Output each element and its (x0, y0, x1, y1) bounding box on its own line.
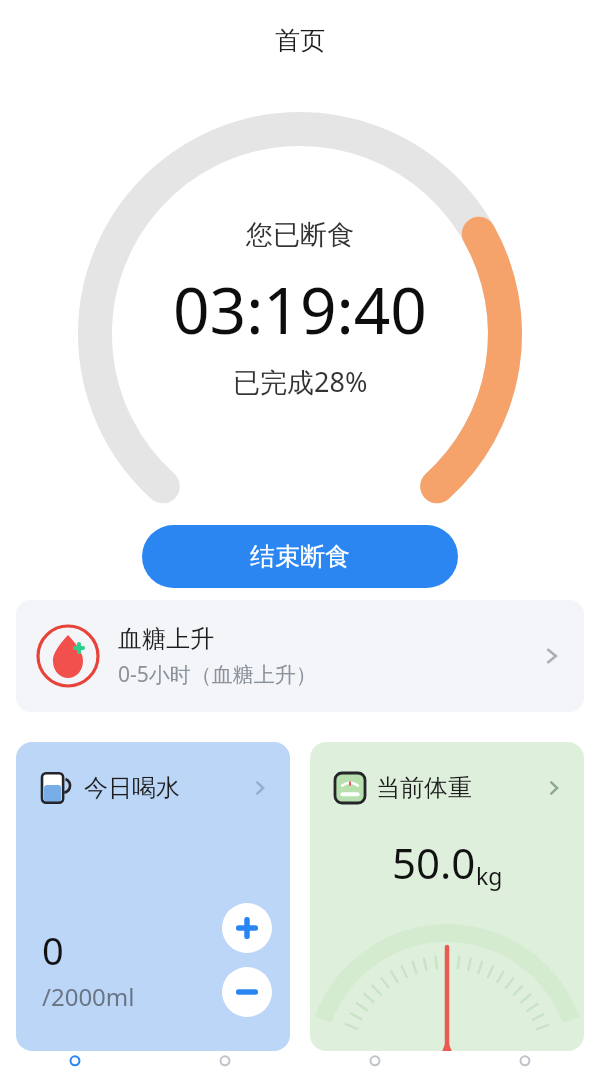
button[interactable]: Tab 4 (450, 1051, 600, 1067)
staticText: 50.0 (392, 834, 476, 891)
button[interactable]: Tab 1 (0, 1051, 150, 1067)
button[interactable]: 今日喝水 (16, 742, 290, 1051)
staticText: 结束断食 (250, 541, 350, 572)
staticText: 今日喝水 (84, 773, 180, 803)
button[interactable]: 结束断食 (142, 525, 458, 588)
staticText: 已完成28% (233, 363, 368, 400)
button[interactable]: 血糖上升 (16, 600, 584, 712)
staticText: /2000ml (42, 980, 135, 1013)
button[interactable]: Tab 2 (150, 1051, 300, 1067)
staticText: 当前体重 (376, 773, 472, 803)
staticText: 首页 (275, 25, 325, 56)
staticText: 血糖上升 (118, 624, 214, 654)
button[interactable]: Add water (222, 903, 272, 953)
staticText: 0-5小时（血糖上升） (118, 660, 317, 689)
button[interactable]: 当前体重 (310, 742, 584, 1051)
staticText: kg (476, 860, 503, 891)
button[interactable]: Tab 3 (300, 1051, 450, 1067)
staticText: 您已断食 (246, 218, 354, 252)
staticText: 03:19:40 (173, 266, 427, 353)
staticText: 0 (42, 924, 64, 976)
button[interactable]: Remove water (222, 967, 272, 1017)
